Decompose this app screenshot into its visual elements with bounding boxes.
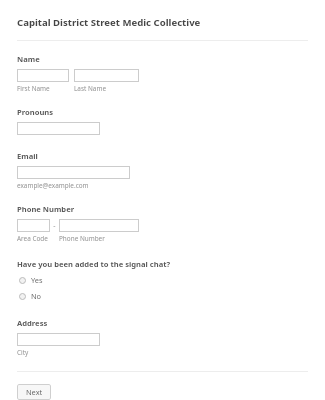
staticText: City	[17, 348, 29, 357]
staticText: Address	[17, 318, 48, 328]
button[interactable]: Next	[17, 384, 51, 400]
staticText: Pronouns	[17, 107, 54, 117]
button[interactable]	[17, 69, 69, 82]
button[interactable]	[59, 219, 139, 232]
button[interactable]	[17, 219, 50, 232]
staticText: Yes	[31, 275, 43, 285]
staticText: Area Code	[17, 234, 59, 243]
button[interactable]: Yes	[19, 274, 43, 286]
staticText: -	[53, 221, 56, 231]
button[interactable]	[74, 69, 139, 82]
staticText: Next	[26, 387, 43, 397]
staticText: Email	[17, 151, 38, 161]
button[interactable]	[17, 166, 130, 179]
button[interactable]: No	[19, 290, 42, 302]
staticText: example@example.com	[17, 181, 89, 190]
staticText: Phone Number	[59, 234, 105, 243]
staticText: Have you been added to the signal chat?	[17, 259, 171, 269]
staticText: Phone Number	[17, 204, 75, 214]
staticText: First Name	[17, 84, 74, 93]
button[interactable]	[17, 333, 100, 346]
staticText: Last Name	[74, 84, 106, 93]
staticText: Capital District Street Medic Collective	[17, 16, 201, 29]
staticText: Name	[17, 54, 40, 64]
staticText: No	[31, 291, 42, 301]
button[interactable]	[17, 122, 100, 135]
